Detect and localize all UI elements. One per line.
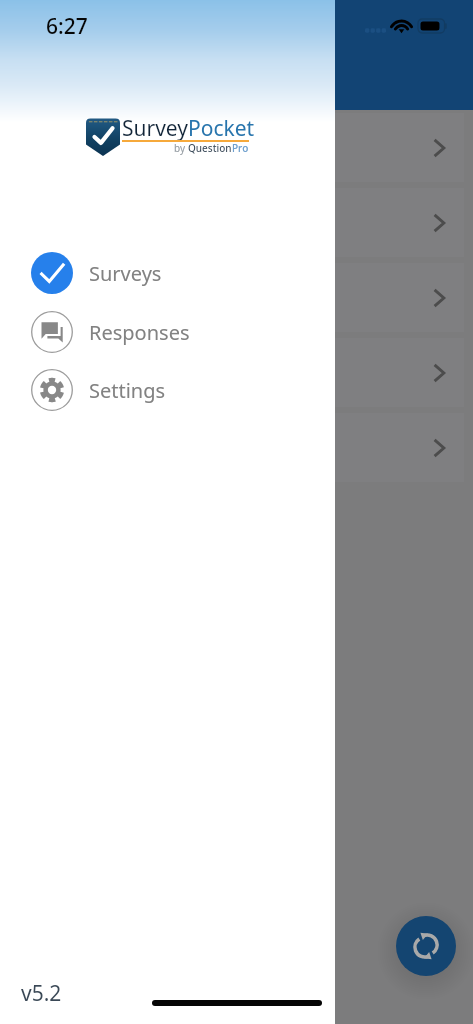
button[interactable]: Settings: [0, 361, 335, 419]
staticText: Settings: [89, 377, 166, 404]
staticText: Responses: [89, 319, 190, 346]
button[interactable]: [0, 188, 464, 257]
staticText: v5.2: [21, 979, 62, 1008]
button[interactable]: Responses: [0, 303, 335, 361]
button[interactable]: [0, 413, 464, 482]
staticText: Pro: [232, 141, 249, 155]
button[interactable]: [0, 113, 464, 182]
button[interactable]: [0, 263, 464, 332]
staticText: Pocket: [188, 114, 255, 143]
staticText: by: [174, 141, 186, 155]
staticText: Surveys: [89, 260, 162, 287]
staticText: 6:27: [46, 12, 88, 41]
staticText: Survey: [122, 114, 188, 143]
button[interactable]: Surveys: [0, 244, 335, 302]
button[interactable]: Sync: [396, 916, 456, 976]
staticText: Question: [188, 141, 232, 155]
button[interactable]: [0, 338, 464, 407]
